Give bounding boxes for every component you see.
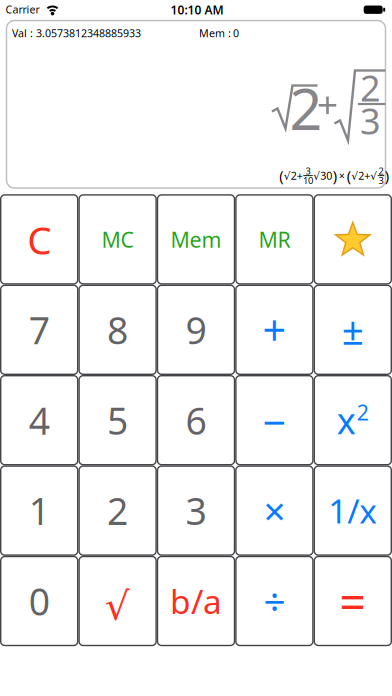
staticText: 0 [233, 26, 239, 40]
staticText: 3 [185, 486, 206, 535]
staticText: √2+ [284, 168, 303, 183]
button[interactable]: 6 [157, 376, 234, 465]
staticText: + [262, 302, 286, 357]
button[interactable]: 8 [79, 285, 156, 374]
staticText: × [339, 168, 345, 183]
staticText: 3 [360, 97, 381, 144]
button[interactable]: C [1, 195, 78, 284]
staticText: MC [102, 225, 134, 253]
staticText: x [337, 396, 356, 444]
button[interactable]: x [314, 376, 391, 465]
staticText: 2 [378, 165, 383, 177]
button[interactable]: × [236, 466, 313, 555]
staticText: ) [333, 166, 337, 185]
staticText: √ [105, 584, 130, 628]
staticText: 3 [305, 165, 310, 177]
button[interactable]: 3 [157, 466, 234, 555]
staticText: × [263, 485, 285, 536]
staticText: Mem : [199, 26, 231, 40]
button[interactable]: 9 [157, 285, 234, 374]
button[interactable]: 5 [79, 376, 156, 465]
staticText: MR [258, 225, 290, 253]
staticText: 1 [29, 486, 50, 535]
staticText: 5 [107, 395, 128, 445]
staticText: 10:10 AM [170, 2, 223, 18]
staticText: 3 [378, 174, 383, 187]
staticText: Carrier [5, 2, 39, 16]
staticText: 0 [29, 576, 50, 626]
button[interactable] [314, 195, 391, 284]
staticText: √2+√ [351, 168, 377, 183]
button[interactable]: 1 [1, 466, 78, 555]
staticText: 2 [357, 398, 369, 426]
button[interactable]: 4 [1, 376, 78, 465]
button[interactable]: Mem [157, 195, 234, 284]
button[interactable]: b/a [157, 556, 234, 645]
staticText: √30 [313, 168, 332, 183]
staticText: − [262, 394, 286, 449]
staticText: 10 [303, 174, 313, 187]
button[interactable]: 7 [1, 285, 78, 374]
staticText: Mem [170, 225, 221, 253]
button[interactable]: − [236, 376, 313, 465]
staticText: 2 [360, 64, 381, 111]
staticText: C [27, 214, 51, 265]
button[interactable]: √ [79, 556, 156, 645]
staticText: 1/x [328, 488, 377, 533]
button[interactable]: 2 [79, 466, 156, 555]
button[interactable]: ± [314, 285, 391, 374]
button[interactable]: + [236, 285, 313, 374]
staticText: Val : 3.0573812348885933 [12, 26, 141, 40]
staticText: 2 [289, 70, 322, 146]
staticText: ± [342, 304, 364, 355]
staticText: 6 [185, 395, 206, 445]
staticText: 9 [185, 305, 206, 355]
button[interactable]: 1/x [314, 466, 391, 555]
staticText: = [339, 570, 366, 632]
button[interactable]: = [314, 556, 391, 645]
staticText: b/a [170, 579, 222, 623]
staticText: ÷ [263, 575, 285, 627]
staticText: ) [385, 166, 389, 185]
staticText: 8 [107, 305, 128, 355]
button[interactable]: ÷ [236, 556, 313, 645]
staticText: 7 [29, 305, 50, 355]
button[interactable]: 0 [1, 556, 78, 645]
staticText: ( [347, 166, 351, 185]
staticText: 2 [107, 486, 128, 535]
button[interactable]: MC [79, 195, 156, 284]
button[interactable]: MR [236, 195, 313, 284]
staticText: 4 [29, 395, 50, 445]
staticText: ( [279, 166, 283, 185]
